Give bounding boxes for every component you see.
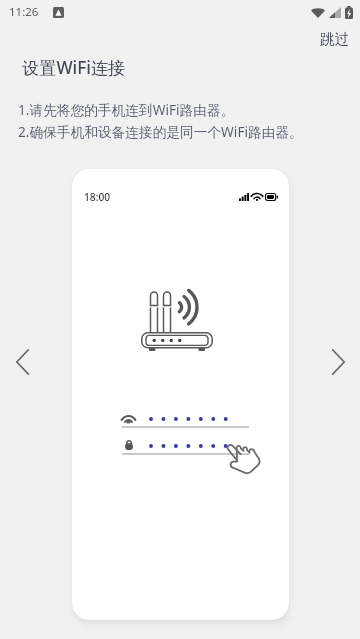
button[interactable]: WiFi name [122,409,249,434]
button[interactable]: Next [316,340,360,384]
button[interactable]: Previous [0,340,44,384]
staticText: 11:26 [9,4,39,20]
button[interactable]: Password [122,436,249,461]
button[interactable]: 跳过 [309,24,360,54]
staticText: 18:00 [84,190,111,204]
staticText: 2.确保手机和设备连接的是同一个WiFi路由器。 [18,122,303,141]
staticText: 设置WiFi连接 [22,56,126,79]
staticText: 跳过 [320,30,349,48]
staticText: 1.请先将您的手机连到WiFi路由器。 [18,100,235,119]
